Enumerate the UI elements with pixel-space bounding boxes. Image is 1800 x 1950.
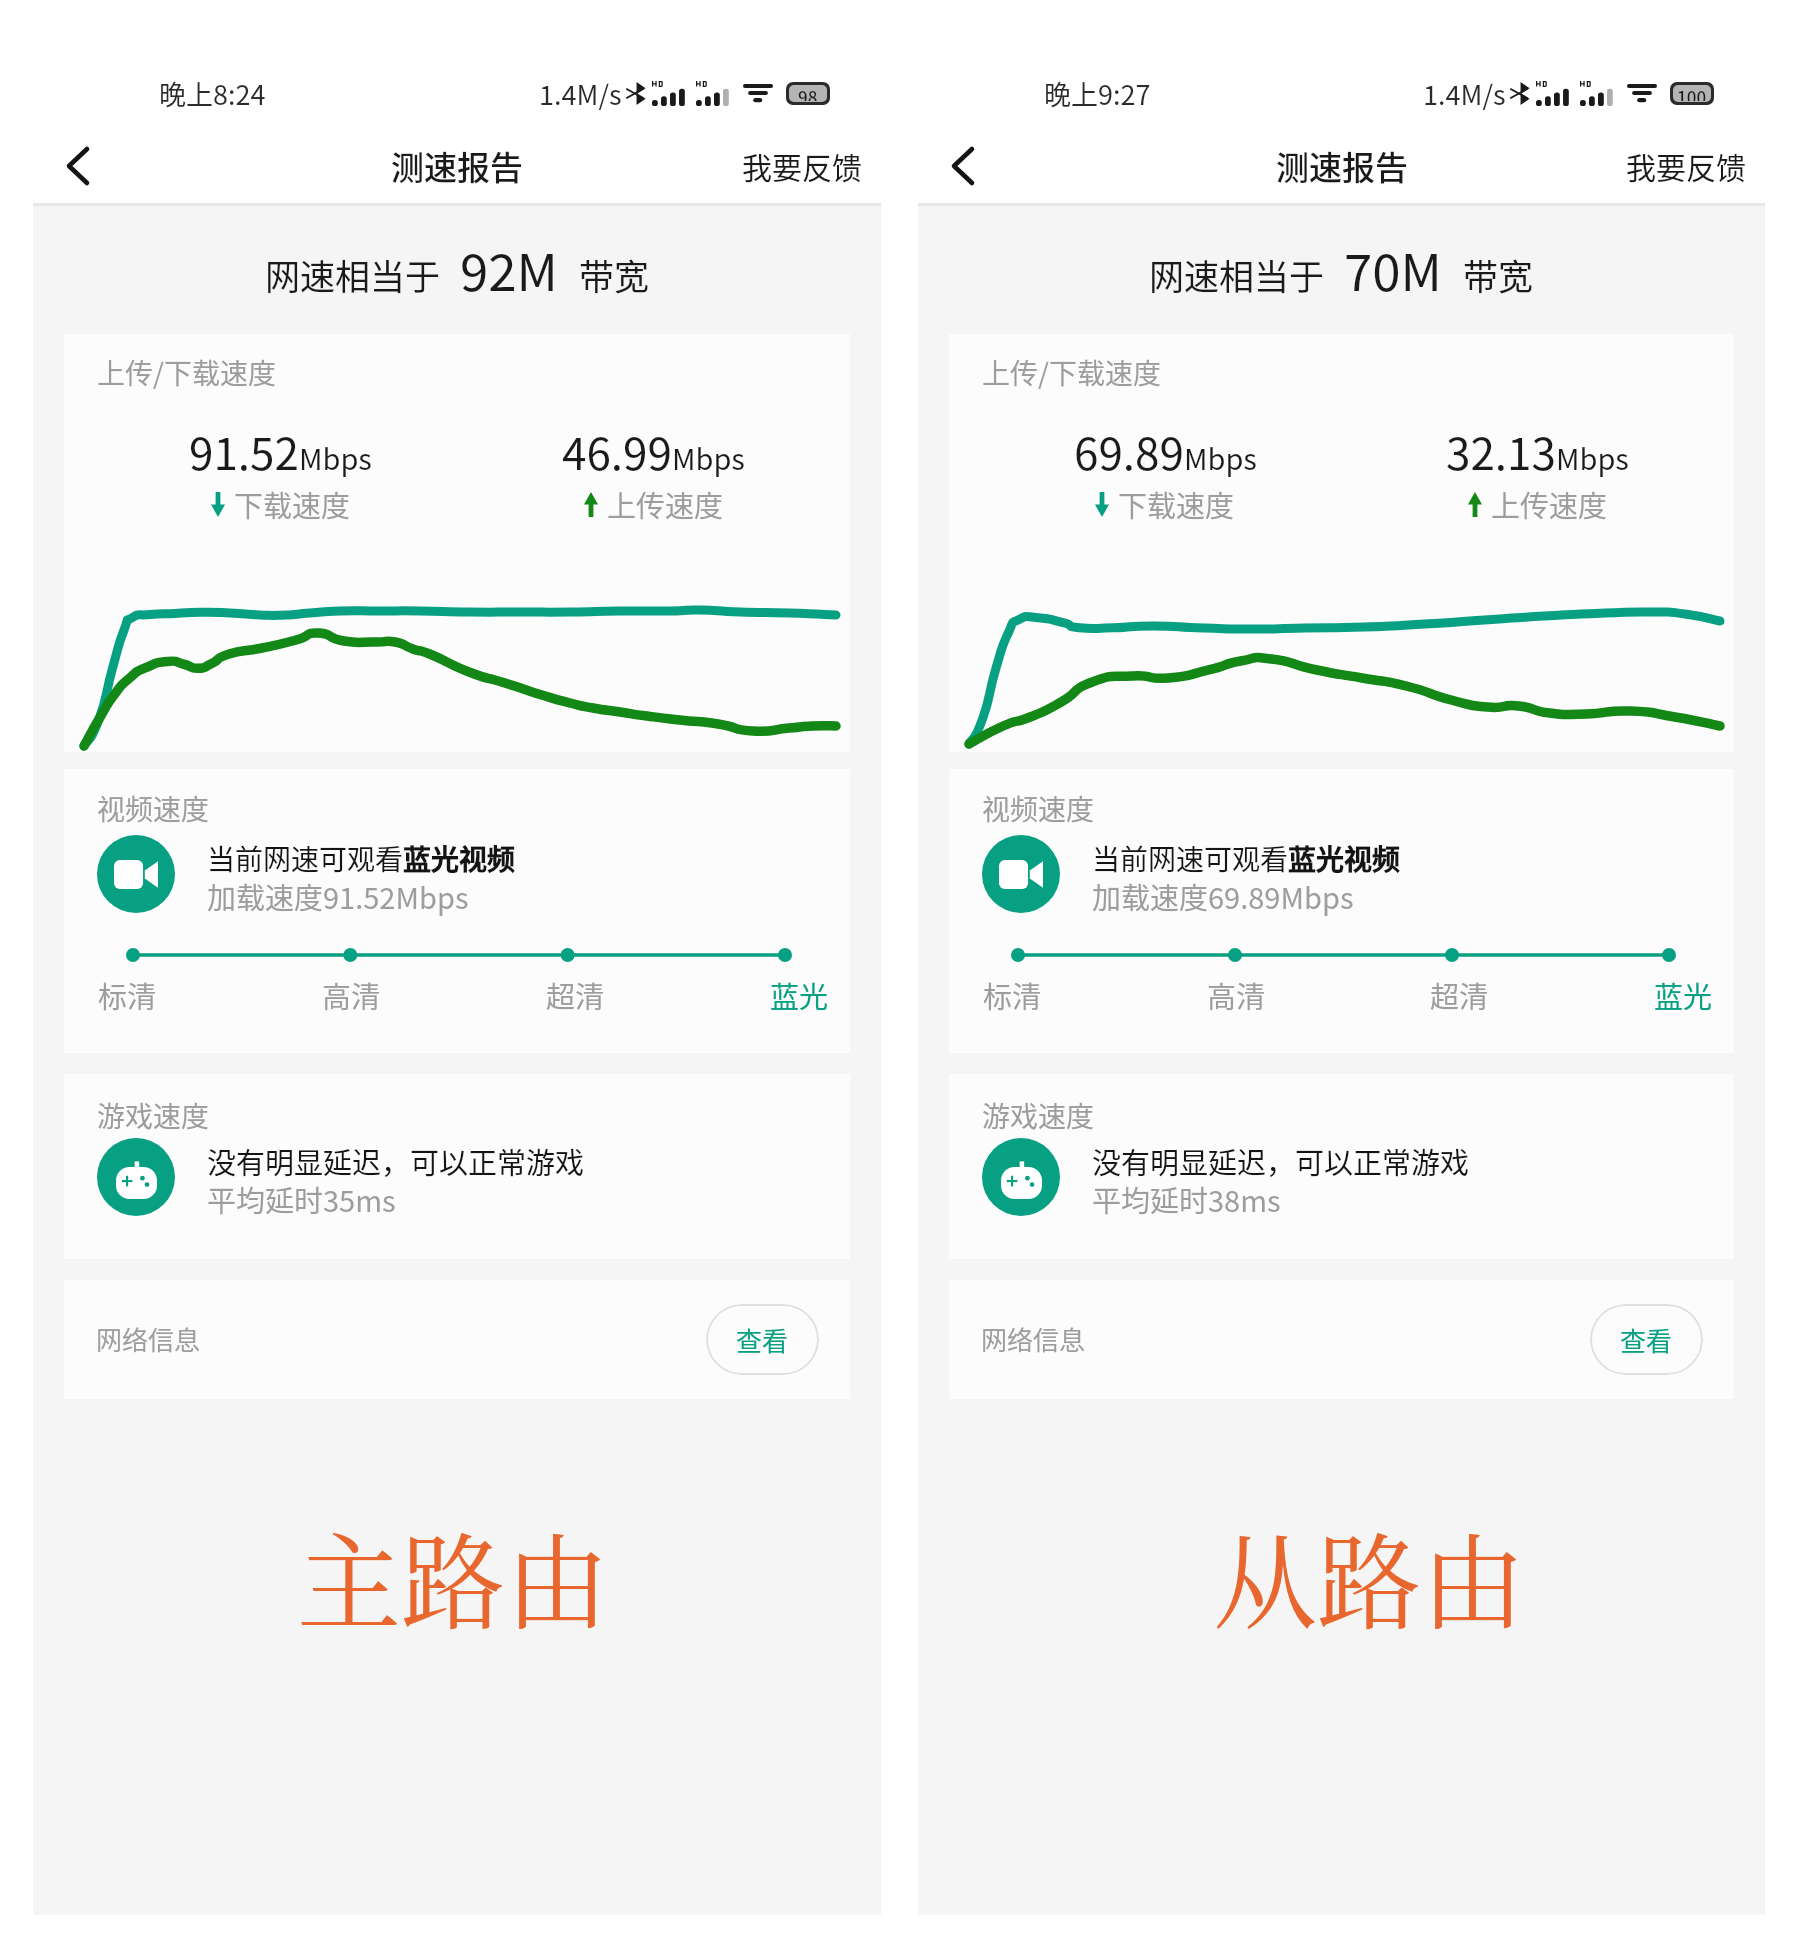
staticText: 上传/下载速度 (97, 352, 276, 393)
staticText: 标清 (98, 974, 157, 1016)
staticText: 下载速度 (234, 483, 351, 525)
staticText: 我要反馈 (1626, 144, 1746, 187)
staticText: 上传速度 (1491, 483, 1608, 525)
staticText: 网络信息 (981, 1320, 1086, 1358)
button[interactable]: 我要反馈 (723, 130, 881, 201)
staticText: 1.4M/s (1423, 74, 1506, 113)
staticText: 带宽 (1463, 249, 1534, 300)
staticText: 100 (1677, 85, 1707, 101)
staticText: 69.89Mbps (1074, 419, 1257, 483)
staticText: 网速相当于 (265, 249, 441, 300)
staticText: 游戏速度 (982, 1095, 1095, 1136)
staticText: 下载速度 (1118, 483, 1235, 525)
button[interactable]: 查看 (1590, 1304, 1703, 1375)
staticText: 上传速度 (607, 483, 724, 525)
staticText: 高清 (1207, 974, 1266, 1016)
staticText: 32.13Mbps (1446, 419, 1629, 483)
button[interactable]: 查看 (706, 1304, 819, 1375)
staticText: 没有明显延迟，可以正常游戏 (207, 1140, 585, 1182)
staticText: 查看 (1620, 1321, 1673, 1359)
button[interactable]: Back (928, 131, 998, 201)
staticText: 超清 (1430, 974, 1489, 1016)
staticText: 晚上9:27 (1044, 74, 1151, 113)
staticText: 加载速度69.89Mbps (1092, 875, 1354, 917)
staticText: 超清 (546, 974, 605, 1016)
staticText: 46.99Mbps (562, 419, 745, 483)
button[interactable]: 我要反馈 (1607, 130, 1765, 201)
staticText: 98 (798, 85, 818, 101)
staticText: 蓝光 (1654, 974, 1713, 1016)
staticText: 视频速度 (97, 788, 210, 829)
staticText: 晚上8:24 (159, 74, 266, 113)
staticText: 1.4M/s (539, 74, 622, 113)
staticText: 视频速度 (982, 788, 1095, 829)
staticText: 网速相当于 (1149, 249, 1325, 300)
staticText: 从路由 (1213, 1501, 1526, 1650)
button[interactable]: 网络信息 (64, 1280, 850, 1399)
staticText: 平均延时35ms (207, 1178, 396, 1220)
button[interactable]: Back (43, 131, 113, 201)
staticText: 网络信息 (96, 1320, 201, 1358)
staticText: 测速报告 (1276, 142, 1408, 190)
staticText: 高清 (322, 974, 381, 1016)
staticText: 加载速度91.52Mbps (207, 875, 469, 917)
staticText: 带宽 (579, 249, 650, 300)
staticText: 蓝光 (770, 974, 829, 1016)
staticText: 70M (1344, 232, 1443, 302)
staticText: 主路由 (297, 1501, 610, 1650)
staticText: 91.52Mbps (189, 419, 372, 483)
button[interactable]: 网络信息 (949, 1280, 1734, 1399)
staticText: 查看 (736, 1321, 789, 1359)
staticText: 上传/下载速度 (982, 352, 1161, 393)
staticText: 测速报告 (391, 142, 523, 190)
staticText: 游戏速度 (97, 1095, 210, 1136)
staticText: 当前网速可观看蓝光视频 (1092, 838, 1401, 879)
staticText: 当前网速可观看蓝光视频 (207, 838, 516, 879)
staticText: 平均延时38ms (1092, 1178, 1281, 1220)
staticText: 我要反馈 (742, 144, 862, 187)
staticText: 92M (460, 232, 559, 302)
staticText: 标清 (983, 974, 1042, 1016)
staticText: 没有明显延迟，可以正常游戏 (1092, 1140, 1470, 1182)
